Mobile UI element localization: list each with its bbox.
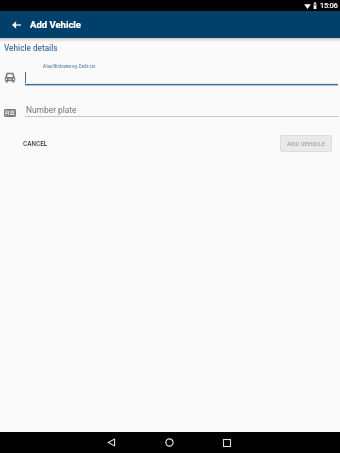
staticText: Alias/Nickname eg. Dad's car [43,64,96,69]
button[interactable]: Alias/Nickname eg. Dad's car [0,58,340,86]
button[interactable]: CANCEL [16,135,55,152]
staticText: 15:06 [320,1,338,9]
staticText: Add Vehicle [30,19,82,30]
button[interactable]: Recent apps [216,432,237,453]
button[interactable]: ADD VEHICLE [280,135,332,152]
button[interactable]: Back [101,432,122,453]
button[interactable]: Number plate [0,100,340,120]
button[interactable]: Back [4,13,28,37]
staticText: ADD VEHICLE [287,140,326,147]
staticText: Vehicle details [4,43,58,53]
button[interactable]: Home [159,432,180,453]
staticText: CANCEL [23,140,48,148]
staticText: Number plate [26,105,77,115]
